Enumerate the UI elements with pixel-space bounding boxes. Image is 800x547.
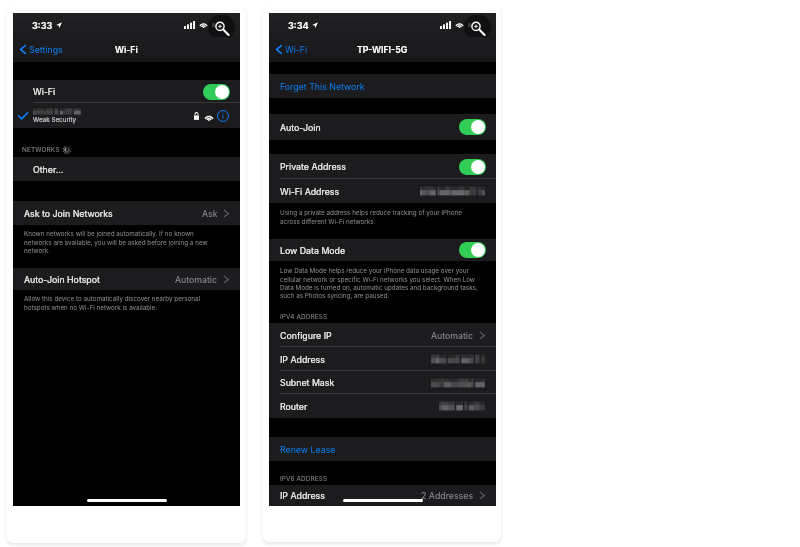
- button[interactable]: Renew Lease: [269, 437, 496, 461]
- button[interactable]: Ask to Join Networks: [13, 201, 240, 225]
- staticText: IPV4 ADDRESS: [280, 313, 328, 321]
- button[interactable]: IP Address: [269, 485, 496, 506]
- staticText: Known networks will be joined automatica…: [24, 230, 215, 254]
- staticText: 3:33: [32, 20, 53, 31]
- staticText: Wi-Fi: [285, 44, 308, 55]
- staticText: Wi-Fi: [33, 86, 56, 97]
- staticText: Forget This Network: [280, 81, 365, 92]
- staticText: Router: [280, 401, 308, 412]
- button[interactable]: Wi-Fi: [13, 80, 240, 103]
- staticText: TP-WIFI-5G: [357, 44, 408, 55]
- staticText: 2 Addresses: [421, 490, 474, 501]
- button[interactable]: Toggle: [459, 242, 486, 258]
- staticText: Low Data Mode: [280, 245, 346, 256]
- button[interactable]: IP Address: [269, 347, 496, 371]
- button[interactable]: Configure IP: [269, 323, 496, 347]
- button[interactable]: Wi-Fi Address: [269, 179, 496, 203]
- button[interactable]: Zoom in: [462, 13, 483, 36]
- button[interactable]: Wi-Fi: [276, 37, 308, 62]
- staticText: Configure IP: [280, 330, 332, 341]
- button[interactable]: Other...: [13, 157, 240, 181]
- staticText: Weak Security: [33, 116, 77, 124]
- button[interactable]: Toggle: [203, 84, 230, 100]
- staticText: NETWORKS: [22, 146, 60, 154]
- button[interactable]: Low Data Mode: [269, 239, 496, 261]
- staticText: Allow this device to automatically disco…: [24, 295, 220, 311]
- staticText: Ask: [202, 208, 218, 219]
- button[interactable]: Toggle: [459, 159, 486, 175]
- button[interactable]: Auto-Join: [269, 114, 496, 140]
- staticText: Private Address: [280, 161, 346, 172]
- staticText: 3:34: [288, 20, 309, 31]
- button[interactable]: Settings: [20, 37, 63, 62]
- button[interactable]: Private Address: [269, 154, 496, 179]
- staticText: IP Address: [280, 354, 325, 365]
- staticText: Ask to Join Networks: [24, 208, 113, 219]
- staticText: Wi-Fi: [115, 44, 138, 55]
- staticText: Renew Lease: [280, 444, 336, 455]
- button[interactable]: Auto-Join Hotspot: [13, 268, 240, 290]
- button[interactable]: Subnet Mask: [269, 371, 496, 394]
- button[interactable]: Router: [269, 394, 496, 418]
- staticText: Settings: [29, 44, 63, 55]
- button[interactable]: Forget This Network: [269, 74, 496, 98]
- staticText: Low Data Mode helps reduce your iPhone d…: [280, 267, 480, 299]
- staticText: IP Address: [280, 490, 325, 501]
- button[interactable]: Toggle: [459, 119, 486, 135]
- staticText: Subnet Mask: [280, 377, 335, 388]
- staticText: Automatic: [175, 274, 218, 285]
- staticText: Wi-Fi Address: [280, 186, 340, 197]
- staticText: Auto-Join Hotspot: [24, 274, 100, 285]
- staticText: Using a private address helps reduce tra…: [280, 209, 474, 225]
- button[interactable]: Weak Security: [13, 103, 240, 128]
- staticText: Auto-Join: [280, 122, 321, 133]
- staticText: IPV6 ADDRESS: [280, 475, 328, 483]
- staticText: Other...: [33, 164, 64, 175]
- staticText: Automatic: [431, 330, 474, 341]
- button[interactable]: Zoom in: [206, 13, 227, 36]
